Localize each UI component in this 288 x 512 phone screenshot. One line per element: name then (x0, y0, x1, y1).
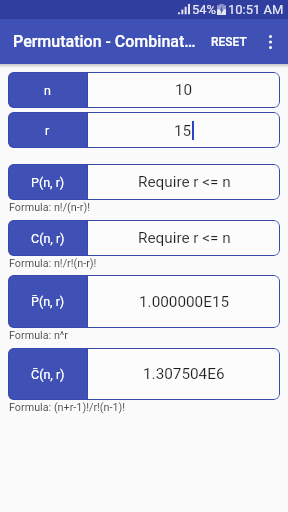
staticText: Formula: n^r (9, 329, 69, 342)
staticText: Permutation - Combinat… (13, 32, 196, 51)
staticText: 10 (175, 81, 193, 99)
button[interactable]: RESET (203, 25, 255, 59)
staticText: n (44, 83, 51, 98)
staticText: 10:51 AM (228, 2, 284, 17)
staticText: Require r <= n (138, 229, 231, 247)
staticText: 54% (192, 2, 217, 17)
button[interactable]: n (8, 72, 280, 108)
button[interactable]: P̄(n, r) (8, 275, 280, 328)
staticText: P̄(n, r) (31, 294, 65, 309)
staticText: C̄(n, r) (31, 367, 65, 382)
staticText: Formula: n!/r!(n-r)! (9, 257, 97, 270)
staticText: 1.000000E15 (139, 293, 230, 311)
button[interactable]: r (8, 112, 280, 148)
staticText: r (45, 123, 50, 138)
staticText: 1.307504E6 (143, 365, 225, 383)
staticText: Formula: n!/(n-r)! (9, 201, 90, 214)
staticText: P(n, r) (31, 175, 65, 190)
button[interactable]: C̄(n, r) (8, 348, 280, 400)
staticText: C(n, r) (31, 231, 65, 246)
staticText: Formula: (n+r-1)!/r!(n-1)! (9, 401, 126, 414)
button[interactable]: C(n, r) (8, 220, 280, 256)
button[interactable]: More options (255, 27, 285, 57)
staticText: RESET (211, 35, 247, 49)
staticText: Require r <= n (138, 173, 231, 191)
staticText: 15 (174, 122, 192, 140)
button[interactable]: P(n, r) (8, 164, 280, 200)
